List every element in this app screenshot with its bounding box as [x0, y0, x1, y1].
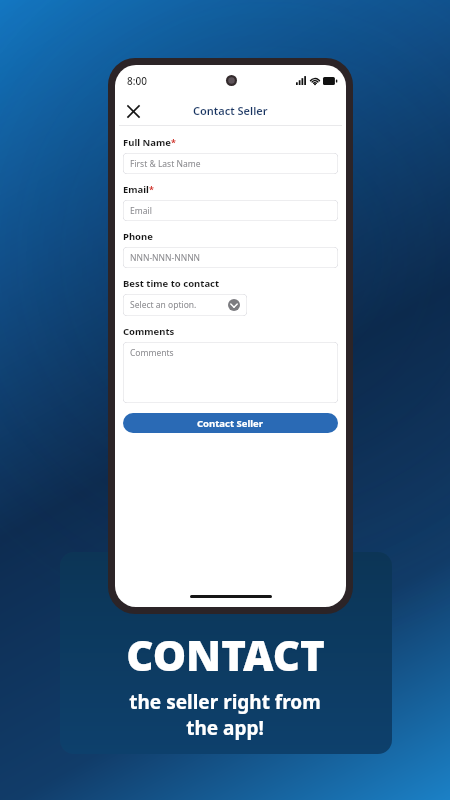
staticText: Email	[123, 183, 149, 196]
staticText: Comments	[123, 325, 175, 338]
staticText: *	[149, 183, 154, 195]
staticText: Select an option.	[130, 299, 197, 311]
staticText: Contact Seller	[193, 103, 268, 118]
staticText: the seller right from the app!	[129, 689, 321, 741]
staticText: Phone	[123, 230, 153, 243]
staticText: Contact Seller	[197, 417, 264, 430]
button[interactable]: Email	[123, 200, 338, 221]
staticText: Full Name	[123, 136, 171, 149]
staticText: CONTACT	[126, 626, 325, 683]
staticText: *	[171, 136, 176, 148]
button[interactable]: Select an option.	[123, 294, 247, 316]
button[interactable]: First & Last Name	[123, 153, 338, 174]
staticText: Comments	[130, 347, 174, 359]
staticText: Email	[130, 205, 152, 216]
staticText: NNN-NNN-NNNN	[130, 252, 201, 263]
staticText: First & Last Name	[130, 158, 201, 169]
staticText: 8:00	[127, 74, 147, 88]
button[interactable]: NNN-NNN-NNNN	[123, 247, 338, 268]
button[interactable]: Comments	[123, 342, 338, 403]
button[interactable]: Contact Seller	[123, 413, 338, 433]
staticText: Best time to contact	[123, 277, 220, 290]
button[interactable]: Close	[120, 98, 146, 124]
